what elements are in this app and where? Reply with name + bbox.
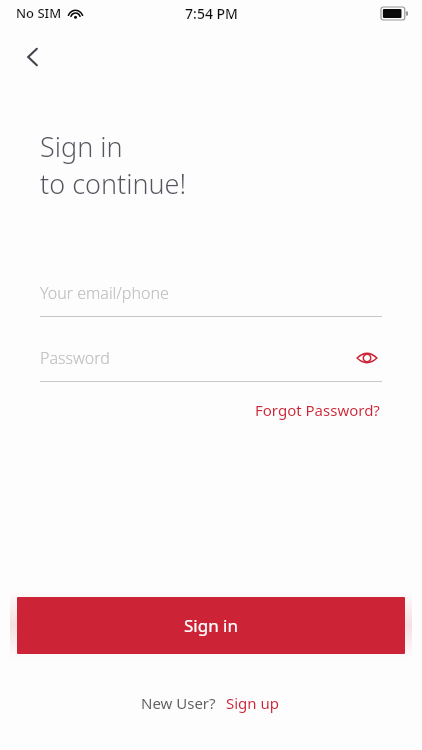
button[interactable]: Sign in (17, 597, 405, 654)
staticText: Sign in (40, 128, 123, 165)
staticText: to continue! (40, 165, 187, 202)
staticText: Forgot Password? (255, 400, 380, 420)
button[interactable]: Sign up (224, 690, 281, 716)
button[interactable]: Back (10, 34, 56, 80)
button[interactable]: Your email/phone (40, 276, 382, 317)
button[interactable]: Password (40, 341, 382, 382)
button[interactable]: Forgot Password? (253, 396, 382, 424)
button[interactable]: Show password (352, 343, 382, 373)
staticText: Password (40, 347, 352, 369)
staticText: Sign in (184, 614, 238, 637)
staticText: No SIM (16, 4, 62, 22)
staticText: 7:54 PM (185, 4, 238, 23)
staticText: Sign up (226, 693, 279, 713)
staticText: Your email/phone (40, 282, 382, 304)
staticText: New User? (141, 693, 216, 713)
